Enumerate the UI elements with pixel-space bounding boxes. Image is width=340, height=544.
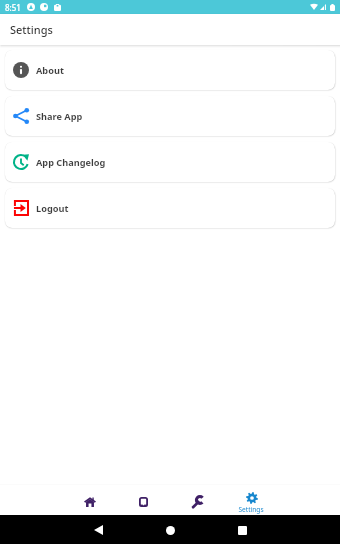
button[interactable]: Share App xyxy=(5,96,335,136)
staticText: Share App xyxy=(36,110,83,123)
staticText: Settings xyxy=(10,22,53,37)
staticText: Settings xyxy=(238,505,264,514)
button[interactable]: Home xyxy=(161,521,179,539)
button[interactable]: Recent apps xyxy=(233,521,251,539)
button[interactable]: Logout xyxy=(5,188,335,228)
button[interactable]: Tools xyxy=(170,484,224,515)
button[interactable]: About xyxy=(5,50,335,90)
staticText: About xyxy=(36,64,64,77)
button[interactable]: Home xyxy=(62,484,116,515)
button[interactable]: Back xyxy=(89,521,107,539)
button[interactable]: Settings xyxy=(224,484,278,515)
staticText: Logout xyxy=(36,202,69,215)
button[interactable]: App Changelog xyxy=(5,142,335,182)
staticText: App Changelog xyxy=(36,156,106,169)
staticText: 8:51 xyxy=(5,2,21,13)
button[interactable]: Devices xyxy=(116,484,170,515)
